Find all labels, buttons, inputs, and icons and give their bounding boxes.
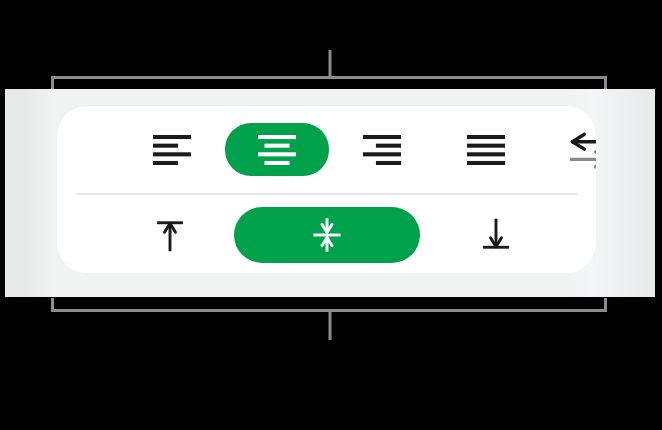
button[interactable]: Align top xyxy=(129,208,211,261)
button[interactable]: Align left xyxy=(131,123,213,176)
button[interactable]: Align bottom xyxy=(455,208,537,261)
button[interactable]: Text direction xyxy=(549,123,596,176)
button[interactable]: Align center xyxy=(225,123,329,176)
button[interactable]: Align right xyxy=(341,123,423,176)
button[interactable]: Justify xyxy=(445,123,527,176)
button[interactable]: Align middle xyxy=(234,207,420,263)
